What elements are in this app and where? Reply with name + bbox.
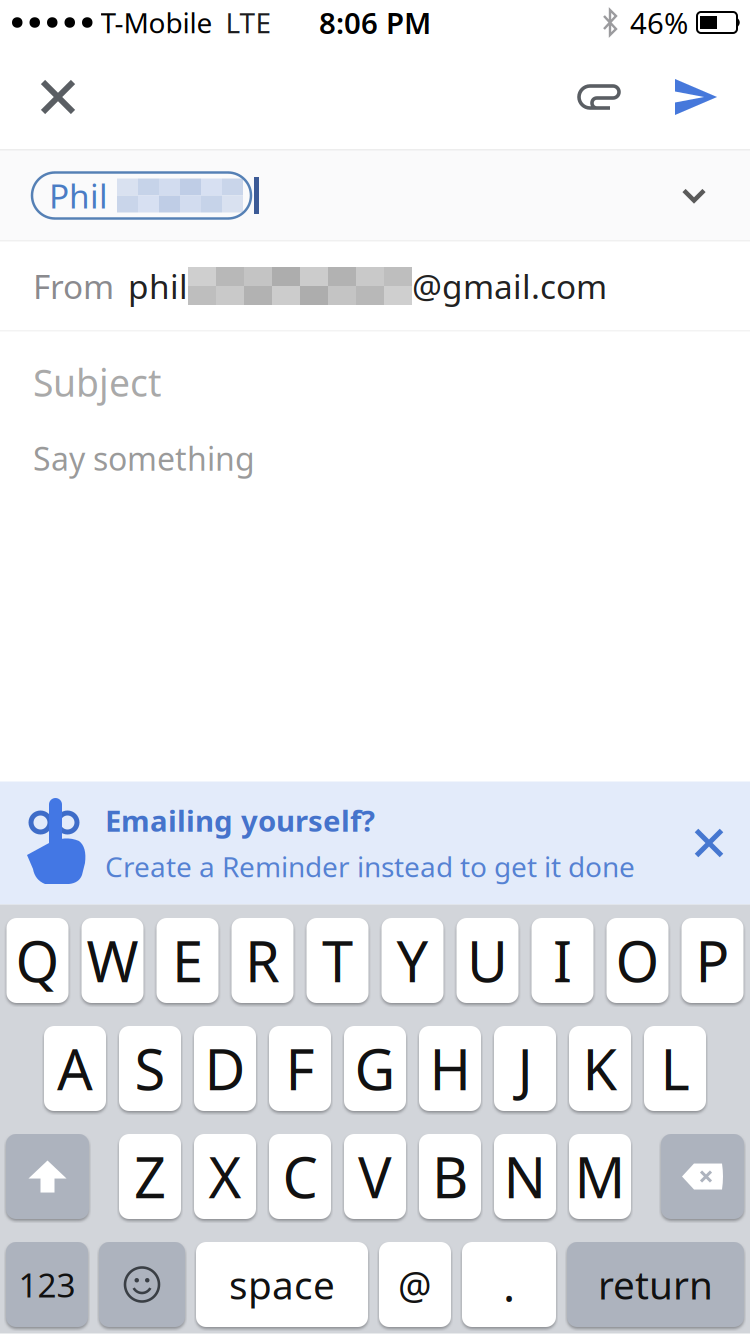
staticText: @ (398, 1260, 432, 1309)
button[interactable]: M (569, 1134, 631, 1219)
button[interactable]: Subject (33, 357, 750, 407)
button[interactable]: . (462, 1242, 556, 1327)
button[interactable]: D (194, 1026, 256, 1111)
button[interactable]: Q (6, 918, 68, 1003)
staticText: 46% (630, 3, 688, 42)
button[interactable]: Dismiss (694, 828, 724, 858)
staticText: Y (396, 923, 428, 998)
staticText: W (86, 923, 138, 998)
staticText: M (574, 1139, 625, 1214)
button[interactable]: Expand recipients (682, 178, 706, 212)
staticText: From (33, 264, 114, 308)
staticText: space (229, 1259, 335, 1310)
staticText: U (467, 923, 508, 998)
staticText: return (598, 1259, 713, 1310)
staticText: K (582, 1031, 617, 1106)
staticText: LTE (225, 4, 271, 41)
button[interactable]: R (231, 918, 293, 1003)
staticText: D (204, 1031, 245, 1106)
staticText: V (358, 1139, 392, 1214)
button[interactable]: Emailing yourself? (27, 797, 635, 889)
staticText: J (517, 1031, 532, 1106)
button[interactable]: Delete (661, 1134, 744, 1219)
staticText: A (57, 1031, 93, 1106)
button[interactable]: Phil (32, 172, 251, 218)
staticText: T-Mobile (100, 4, 212, 41)
button[interactable]: Shift (6, 1134, 89, 1219)
button[interactable]: S (119, 1026, 181, 1111)
staticText: 8:06 PM (319, 3, 431, 42)
button[interactable]: Say something (33, 437, 750, 480)
button[interactable]: W (81, 918, 143, 1003)
staticText: X (208, 1139, 241, 1214)
staticText: E (172, 923, 203, 998)
staticText: Subject (33, 357, 161, 407)
button[interactable]: G (344, 1026, 406, 1111)
button[interactable]: 123 (6, 1242, 88, 1327)
staticText: F (285, 1031, 314, 1106)
staticText: B (432, 1139, 468, 1214)
staticText: @gmail.com (412, 264, 607, 308)
button[interactable]: space (196, 1242, 368, 1327)
button[interactable]: V (344, 1134, 406, 1219)
button[interactable]: Y (381, 918, 443, 1003)
button[interactable]: L (644, 1026, 706, 1111)
button[interactable]: H (419, 1026, 481, 1111)
staticText: phil (128, 264, 188, 308)
button[interactable]: Attach file (577, 83, 621, 110)
button[interactable]: E (156, 918, 218, 1003)
staticText: . (503, 1254, 515, 1315)
button[interactable]: Emoji (99, 1242, 185, 1327)
button[interactable]: P (681, 918, 743, 1003)
button[interactable]: A (44, 1026, 106, 1111)
button[interactable]: U (456, 918, 518, 1003)
staticText: 123 (18, 1262, 75, 1307)
staticText: Create a Reminder instead to get it done (105, 848, 635, 885)
button[interactable]: O (606, 918, 668, 1003)
staticText: O (615, 923, 659, 998)
staticText: P (695, 923, 729, 998)
button[interactable]: B (419, 1134, 481, 1219)
staticText: Q (15, 923, 59, 998)
staticText: G (354, 1031, 395, 1106)
staticText: C (282, 1139, 317, 1214)
staticText: Say something (33, 437, 255, 480)
button[interactable]: F (269, 1026, 331, 1111)
button[interactable]: return (567, 1242, 744, 1327)
staticText: I (553, 923, 572, 998)
button[interactable]: @ (379, 1242, 451, 1327)
staticText: H (429, 1031, 470, 1106)
button[interactable]: Close (40, 79, 76, 115)
button[interactable]: N (494, 1134, 556, 1219)
staticText: S (134, 1031, 165, 1106)
staticText: T (322, 923, 353, 998)
staticText: L (660, 1031, 689, 1106)
button[interactable]: Z (119, 1134, 181, 1219)
button[interactable]: I (531, 918, 593, 1003)
staticText: N (503, 1139, 546, 1214)
button[interactable]: J (494, 1026, 556, 1111)
button[interactable]: From (0, 241, 750, 330)
staticText: Emailing yourself? (105, 801, 375, 840)
button[interactable]: Send (675, 79, 717, 115)
staticText: Z (134, 1139, 166, 1214)
staticText: Phil (49, 173, 108, 218)
staticText: R (245, 923, 280, 998)
button[interactable]: T (306, 918, 368, 1003)
button[interactable]: X (194, 1134, 256, 1219)
button[interactable]: K (569, 1026, 631, 1111)
button[interactable]: C (269, 1134, 331, 1219)
